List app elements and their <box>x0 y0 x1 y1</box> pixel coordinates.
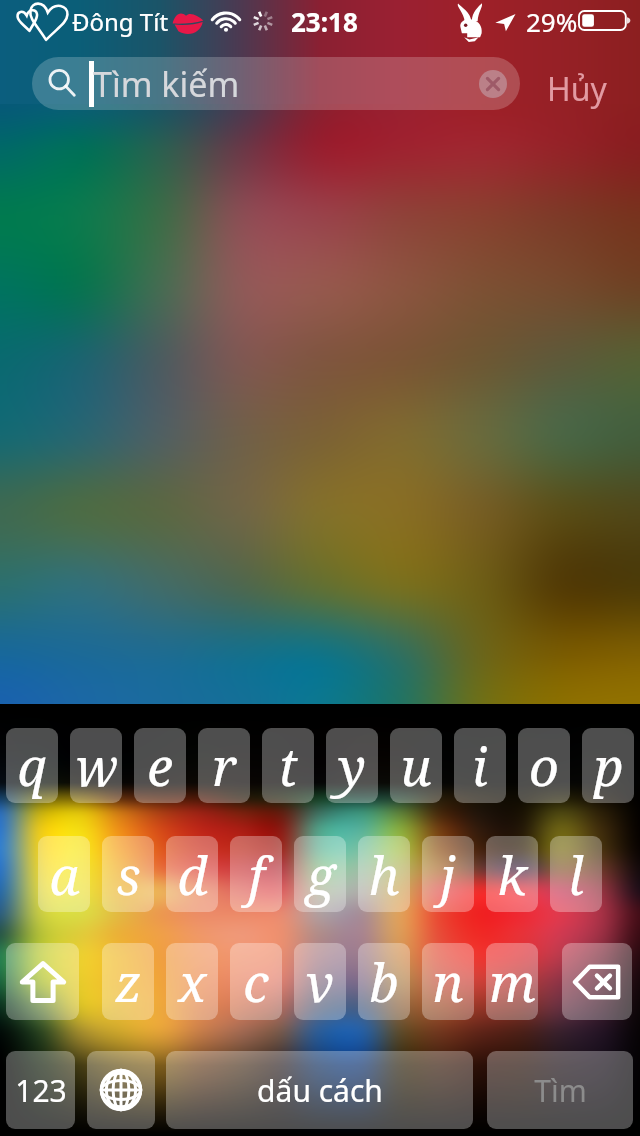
staticText: r <box>212 730 237 801</box>
button[interactable]: Tìm kiếm <box>32 57 520 110</box>
button[interactable]: s <box>102 836 154 912</box>
button[interactable]: y <box>326 728 378 803</box>
staticText: e <box>147 730 173 801</box>
staticText: d <box>177 839 208 910</box>
staticText: m <box>489 946 536 1017</box>
staticText: h <box>368 839 400 910</box>
staticText: c <box>243 946 269 1017</box>
staticText: Tìm kiếm <box>93 61 240 107</box>
staticText: y <box>338 730 366 801</box>
button[interactable]: c <box>230 943 282 1020</box>
staticText: o <box>529 730 559 801</box>
button[interactable]: Hủy <box>541 61 613 117</box>
button[interactable]: d <box>166 836 218 912</box>
button[interactable]: w <box>70 728 122 803</box>
button[interactable]: o <box>518 728 570 803</box>
staticText: Tìm <box>534 1070 587 1111</box>
staticText: b <box>369 946 399 1017</box>
staticText: j <box>440 839 456 910</box>
staticText: i <box>472 730 488 801</box>
staticText: t <box>278 730 298 801</box>
staticText: x <box>178 946 207 1017</box>
staticText: k <box>497 839 527 910</box>
button[interactable]: Clear text <box>479 70 507 98</box>
button[interactable]: m <box>486 943 538 1020</box>
button[interactable]: j <box>422 836 474 912</box>
staticText: w <box>75 730 118 801</box>
button[interactable]: p <box>582 728 634 803</box>
staticText: n <box>432 946 464 1017</box>
button[interactable]: e <box>134 728 186 803</box>
button[interactable]: x <box>166 943 218 1020</box>
button[interactable]: n <box>422 943 474 1020</box>
staticText: f <box>248 839 265 910</box>
staticText: g <box>306 839 335 910</box>
button[interactable]: i <box>454 728 506 803</box>
staticText: u <box>400 730 432 801</box>
staticText: q <box>17 730 47 801</box>
button[interactable]: 123 <box>6 1051 75 1129</box>
staticText: z <box>115 946 142 1017</box>
staticText: dấu cách <box>257 1070 383 1111</box>
staticText: s <box>116 839 141 910</box>
button[interactable]: a <box>38 836 90 912</box>
button[interactable]: v <box>294 943 346 1020</box>
button[interactable]: b <box>358 943 410 1020</box>
button[interactable]: f <box>230 836 282 912</box>
button[interactable]: t <box>262 728 314 803</box>
button[interactable]: q <box>6 728 58 803</box>
staticText: v <box>306 946 334 1017</box>
staticText: 123 <box>15 1070 67 1111</box>
button[interactable]: Tìm <box>487 1051 633 1129</box>
staticText: Hủy <box>547 67 607 111</box>
button[interactable]: l <box>550 836 602 912</box>
button[interactable]: z <box>102 943 154 1020</box>
button[interactable]: Backspace <box>562 943 632 1020</box>
button[interactable]: Switch keyboard <box>87 1051 155 1129</box>
staticText: Đông Tít <box>72 5 169 38</box>
staticText: 29% <box>526 4 578 39</box>
staticText: a <box>49 839 80 910</box>
staticText: p <box>593 730 624 801</box>
button[interactable]: g <box>294 836 346 912</box>
button[interactable]: Shift <box>6 943 79 1020</box>
button[interactable]: k <box>486 836 538 912</box>
staticText: 23:18 <box>291 4 358 39</box>
staticText: l <box>568 839 584 910</box>
button[interactable]: r <box>198 728 250 803</box>
button[interactable]: u <box>390 728 442 803</box>
button[interactable]: h <box>358 836 410 912</box>
button[interactable]: dấu cách <box>166 1051 473 1129</box>
